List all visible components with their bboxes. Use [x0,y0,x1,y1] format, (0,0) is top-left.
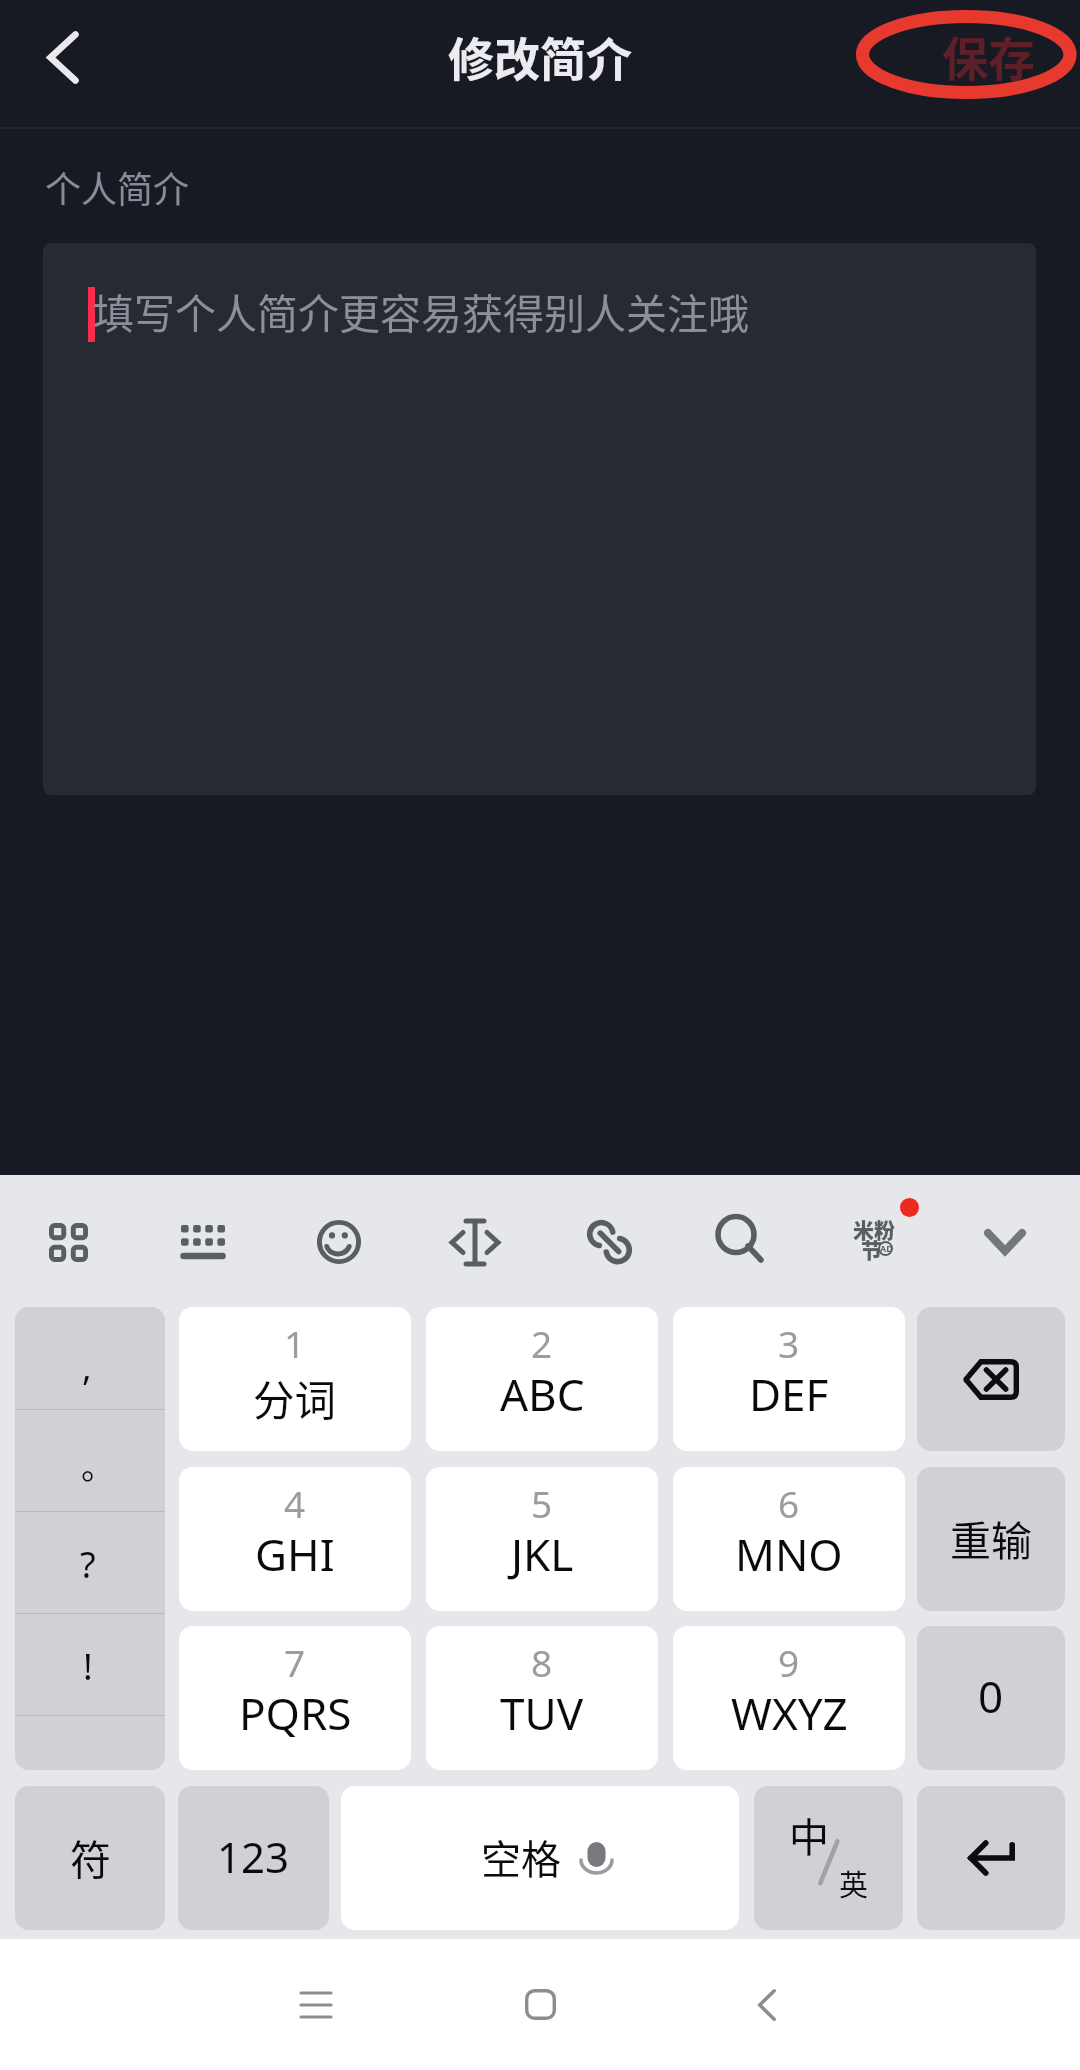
button[interactable]: 重输 [917,1467,1065,1611]
button[interactable]: Recents [256,1939,376,2070]
staticText: MNO [735,1524,843,1584]
button[interactable]: Hide keyboard [961,1176,1049,1308]
staticText: AD [880,1242,893,1254]
button[interactable]: Link [566,1176,654,1308]
staticText: 符 [70,1827,111,1886]
button[interactable]: 4 [179,1467,411,1611]
staticText: 个人简介 [45,161,190,213]
staticText: 重输 [950,1508,1032,1567]
button[interactable]: Enter [917,1786,1065,1930]
staticText: 0 [978,1666,1004,1726]
button[interactable]: 8 [426,1626,658,1770]
staticText: 7 [284,1637,306,1687]
staticText: ! [83,1642,93,1691]
staticText: 分词 [253,1368,337,1428]
button[interactable]: 5 [426,1467,658,1611]
button[interactable]: 7 [179,1626,411,1770]
staticText: GHI [255,1524,335,1584]
staticText: 保存 [942,22,1035,89]
button[interactable]: 填写个人简介更容易获得别人关注哦 [43,243,1036,795]
staticText: 英 [839,1862,869,1904]
button[interactable]: 9 [673,1626,905,1770]
button[interactable]: 符 [15,1786,165,1930]
staticText: PQRS [239,1683,352,1743]
staticText: 米粉 [853,1214,895,1244]
button[interactable]: Search [697,1176,785,1308]
staticText: 123 [217,1828,290,1885]
staticText: 空格 [481,1828,561,1886]
button[interactable]: Delete [917,1307,1065,1451]
staticText: 填写个人简介更容易获得别人关注哦 [93,281,749,340]
button[interactable]: 中 [754,1786,903,1930]
staticText: ? [80,1540,96,1589]
staticText: 。 [81,1440,115,1489]
button[interactable]: Keyboard [159,1176,247,1308]
button[interactable]: 3 [673,1307,905,1451]
button[interactable]: , [15,1307,165,1409]
button[interactable]: Back [0,0,126,129]
button[interactable]: 空格 [341,1786,739,1930]
staticText: 节 [861,1234,882,1264]
staticText: ABC [500,1364,585,1424]
staticText: 9 [778,1637,800,1687]
staticText: JKL [511,1524,574,1584]
button[interactable]: 。 [15,1409,165,1511]
button[interactable]: Emoji [295,1176,383,1308]
button[interactable]: Panels [24,1176,112,1308]
staticText: 4 [284,1478,306,1528]
button[interactable]: 6 [673,1467,905,1611]
button[interactable]: 123 [178,1786,329,1930]
button[interactable]: Mi Fan Festival ad [830,1175,918,1307]
button[interactable]: ! [15,1613,165,1715]
button[interactable]: 1 [179,1307,411,1451]
staticText: 8 [531,1637,553,1687]
button[interactable]: 2 [426,1307,658,1451]
button[interactable]: Back [707,1939,827,2070]
button[interactable]: Home [480,1939,600,2070]
staticText: DEF [749,1364,829,1424]
button[interactable] [15,1715,165,1770]
staticText: 修改简介 [448,23,632,90]
staticText: WXYZ [731,1683,848,1743]
button[interactable]: 保存 [900,0,1080,129]
staticText: TUV [500,1683,584,1743]
staticText: 2 [531,1318,553,1368]
staticText: 中 [789,1806,829,1864]
staticText: 5 [531,1478,553,1528]
staticText: 1 [284,1318,306,1368]
staticText: , [82,1342,92,1391]
button[interactable]: Move cursor [431,1176,519,1308]
button[interactable]: ? [15,1511,165,1613]
button[interactable]: 0 [917,1626,1065,1770]
staticText: 3 [778,1318,800,1368]
staticText: 6 [778,1478,800,1528]
